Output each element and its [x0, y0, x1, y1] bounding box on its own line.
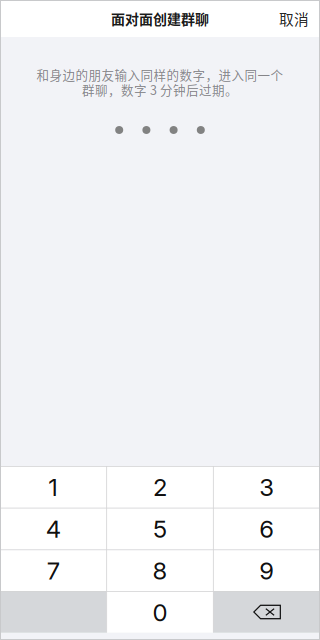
button[interactable]: 0 [107, 591, 213, 633]
button[interactable]: 7 [0, 549, 107, 591]
button[interactable]: 5 [107, 508, 213, 549]
staticText: 2 [153, 473, 167, 502]
staticText: 8 [152, 556, 167, 585]
staticText: 5 [153, 514, 167, 543]
button[interactable]: Delete [213, 591, 320, 633]
staticText: 和身边的朋友输入同样的数字，进入同一个 [36, 65, 283, 83]
button[interactable]: 2 [107, 466, 213, 508]
button[interactable]: 4 [0, 508, 107, 549]
staticText: 面对面创建群聊 [111, 8, 209, 29]
button[interactable]: 1 [0, 466, 107, 508]
button[interactable]: 取消 [279, 0, 320, 37]
staticText: 9 [259, 556, 274, 585]
staticText: 取消 [279, 8, 309, 29]
button[interactable]: 6 [213, 508, 320, 549]
button[interactable]: 8 [107, 549, 213, 591]
staticText: 4 [46, 514, 61, 543]
staticText: 6 [259, 514, 274, 543]
staticText: 3 [259, 473, 274, 502]
staticText: 7 [47, 556, 60, 585]
button[interactable]: 3 [213, 466, 320, 508]
button[interactable]: 9 [213, 549, 320, 591]
staticText: 群聊，数字 3 分钟后过期。 [82, 80, 238, 98]
staticText: 0 [152, 598, 167, 627]
staticText: 1 [48, 473, 58, 502]
